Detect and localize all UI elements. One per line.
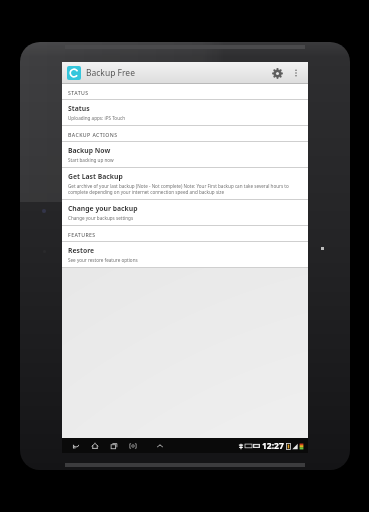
staticText: STATUS — [68, 89, 89, 96]
staticText: See your restore feature options — [68, 257, 138, 263]
staticText: BACKUP ACTIONS — [68, 131, 118, 138]
button[interactable]: Change your backup — [62, 200, 308, 226]
staticText: Backup Free — [86, 67, 135, 79]
button[interactable]: Get Last Backup — [62, 168, 308, 200]
staticText: Start backing up now — [68, 157, 114, 163]
staticText: Change your backups settings — [68, 215, 134, 221]
staticText: Change your backup — [68, 204, 138, 213]
button[interactable]: Settings — [266, 62, 288, 84]
staticText: Status — [68, 104, 90, 113]
button[interactable]: Expand — [153, 439, 166, 452]
button[interactable]: Screenshot — [126, 439, 139, 452]
button[interactable]: App icon — [67, 66, 81, 80]
button[interactable]: Restore — [62, 242, 308, 268]
staticText: Backup Now — [68, 146, 111, 155]
staticText: 12:27 — [262, 440, 284, 452]
staticText: Get archive of your last backup (Note - … — [68, 183, 302, 195]
staticText: Restore — [68, 246, 95, 255]
staticText: Uploading apps: iPS Touch — [68, 115, 126, 121]
button[interactable]: Status — [62, 100, 308, 126]
button[interactable]: More options — [288, 65, 304, 81]
button[interactable]: Backup Now — [62, 142, 308, 168]
button[interactable]: Back — [69, 439, 82, 452]
staticText: Get Last Backup — [68, 172, 123, 181]
button[interactable]: Home — [88, 439, 101, 452]
staticText: FEATURES — [68, 231, 96, 238]
button[interactable]: Recents — [107, 439, 120, 452]
